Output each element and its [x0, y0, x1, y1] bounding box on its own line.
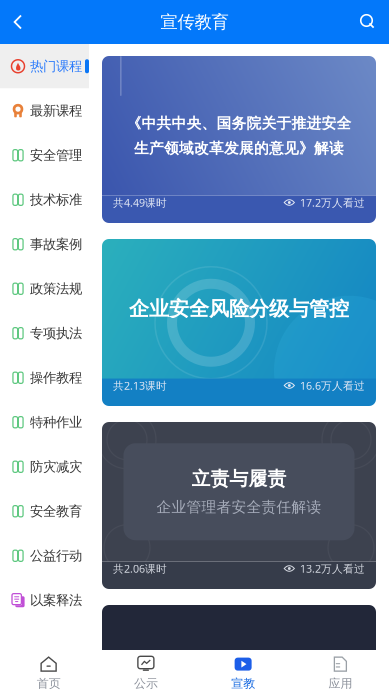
staticText: 安全教育: [30, 503, 82, 519]
button[interactable]: 应用: [292, 650, 389, 696]
staticText: 13.2万人看过: [300, 561, 365, 576]
button[interactable]: 操作教程: [0, 355, 89, 400]
button[interactable]: 立责与履责: [102, 422, 376, 589]
button[interactable]: 防灾减灾: [0, 444, 89, 489]
staticText: 政策法规: [30, 281, 82, 297]
button[interactable]: 安全管理: [0, 133, 89, 177]
button[interactable]: 事故案例: [0, 222, 89, 266]
staticText: 立责与履责: [191, 467, 286, 490]
staticText: 安全管理: [30, 147, 82, 163]
staticText: 《中共中央、国务院关于推进安全: [126, 114, 351, 132]
button[interactable]: 首页: [0, 650, 97, 696]
staticText: 应用: [328, 676, 352, 691]
staticText: 操作教程: [30, 370, 82, 386]
staticText: 共2.13课时: [113, 378, 167, 393]
button[interactable]: 安全教育: [0, 489, 89, 533]
button[interactable]: 宣教: [194, 650, 292, 696]
button[interactable]: 技术标准: [0, 177, 89, 222]
staticText: 首页: [37, 676, 61, 691]
button[interactable]: 返回: [0, 0, 36, 43]
staticText: 宣教: [231, 676, 255, 691]
staticText: 共2.06课时: [113, 561, 167, 576]
button[interactable]: 政策法规: [0, 266, 89, 311]
staticText: 17.2万人看过: [300, 195, 365, 210]
button[interactable]: 以案释法: [0, 578, 89, 622]
staticText: 企业安全风险分级与管控: [129, 296, 349, 321]
staticText: 宣传教育: [160, 11, 228, 33]
button[interactable]: 《中共中央、国务院关于推进安全: [102, 56, 376, 223]
button[interactable]: 专项执法: [0, 311, 89, 355]
button[interactable]: 搜索: [347, 0, 389, 44]
staticText: 公示: [134, 676, 158, 691]
button[interactable]: 企业安全风险分级与管控: [102, 239, 376, 406]
staticText: 共4.49课时: [113, 195, 167, 210]
staticText: 16.6万人看过: [300, 378, 365, 393]
button[interactable]: 公示: [97, 650, 194, 696]
button[interactable]: [102, 605, 376, 696]
staticText: 专项执法: [30, 325, 82, 341]
staticText: 技术标准: [30, 192, 82, 208]
staticText: 防灾减灾: [30, 459, 82, 475]
staticText: 最新课程: [30, 103, 82, 119]
button[interactable]: 特种作业: [0, 400, 89, 444]
button[interactable]: 热门课程: [0, 44, 89, 88]
staticText: 企业管理者安全责任解读: [156, 498, 321, 516]
button[interactable]: 最新课程: [0, 88, 89, 133]
staticText: 特种作业: [30, 414, 82, 430]
staticText: 热门课程: [30, 58, 82, 74]
button[interactable]: 公益行动: [0, 533, 89, 578]
staticText: 生产领域改革发展的意见》解读: [134, 139, 344, 157]
staticText: 公益行动: [30, 548, 82, 564]
staticText: 事故案例: [30, 236, 82, 252]
staticText: 以案释法: [30, 592, 82, 608]
